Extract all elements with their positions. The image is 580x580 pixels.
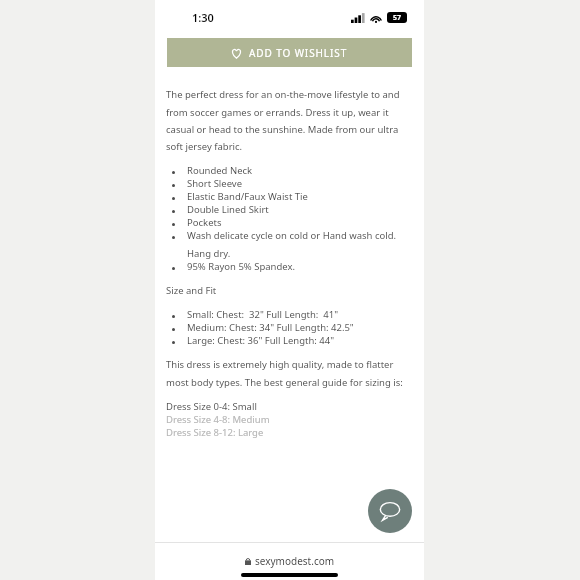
- staticText: Elastic Band/Faux Waist Tie: [187, 190, 308, 203]
- staticText: 57: [393, 13, 402, 23]
- staticText: 95% Rayon 5% Spandex.: [187, 260, 296, 273]
- staticText: 1:30: [192, 10, 214, 25]
- staticText: Small: Chest: 32" Full Length: 41": [187, 308, 339, 321]
- staticText: Size and Fit: [166, 284, 217, 297]
- staticText: Dress Size 8-12: Large: [166, 426, 264, 439]
- staticText: Wash delicate cycle on cold or Hand wash…: [187, 229, 413, 260]
- staticText: Double Lined Skirt: [187, 203, 269, 216]
- staticText: Dress Size 4-8: Medium: [166, 413, 270, 426]
- staticText: Dress Size 0-4: Small: [166, 400, 257, 413]
- staticText: Medium: Chest: 34" Full Length: 42.5": [187, 321, 354, 334]
- staticText: Pockets: [187, 216, 222, 229]
- staticText: ADD TO WISHLIST: [249, 46, 348, 60]
- staticText: Short Sleeve: [187, 177, 243, 190]
- button[interactable]: Chat: [368, 489, 412, 533]
- staticText: Rounded Neck: [187, 164, 253, 177]
- button[interactable]: ADD TO WISHLIST: [167, 38, 412, 67]
- staticText: Large: Chest: 36" Full Length: 44": [187, 334, 335, 347]
- staticText: The perfect dress for an on-the-move lif…: [166, 88, 413, 153]
- staticText: This dress is extremely high quality, ma…: [166, 358, 413, 389]
- staticText: sexymodest.com: [255, 554, 335, 568]
